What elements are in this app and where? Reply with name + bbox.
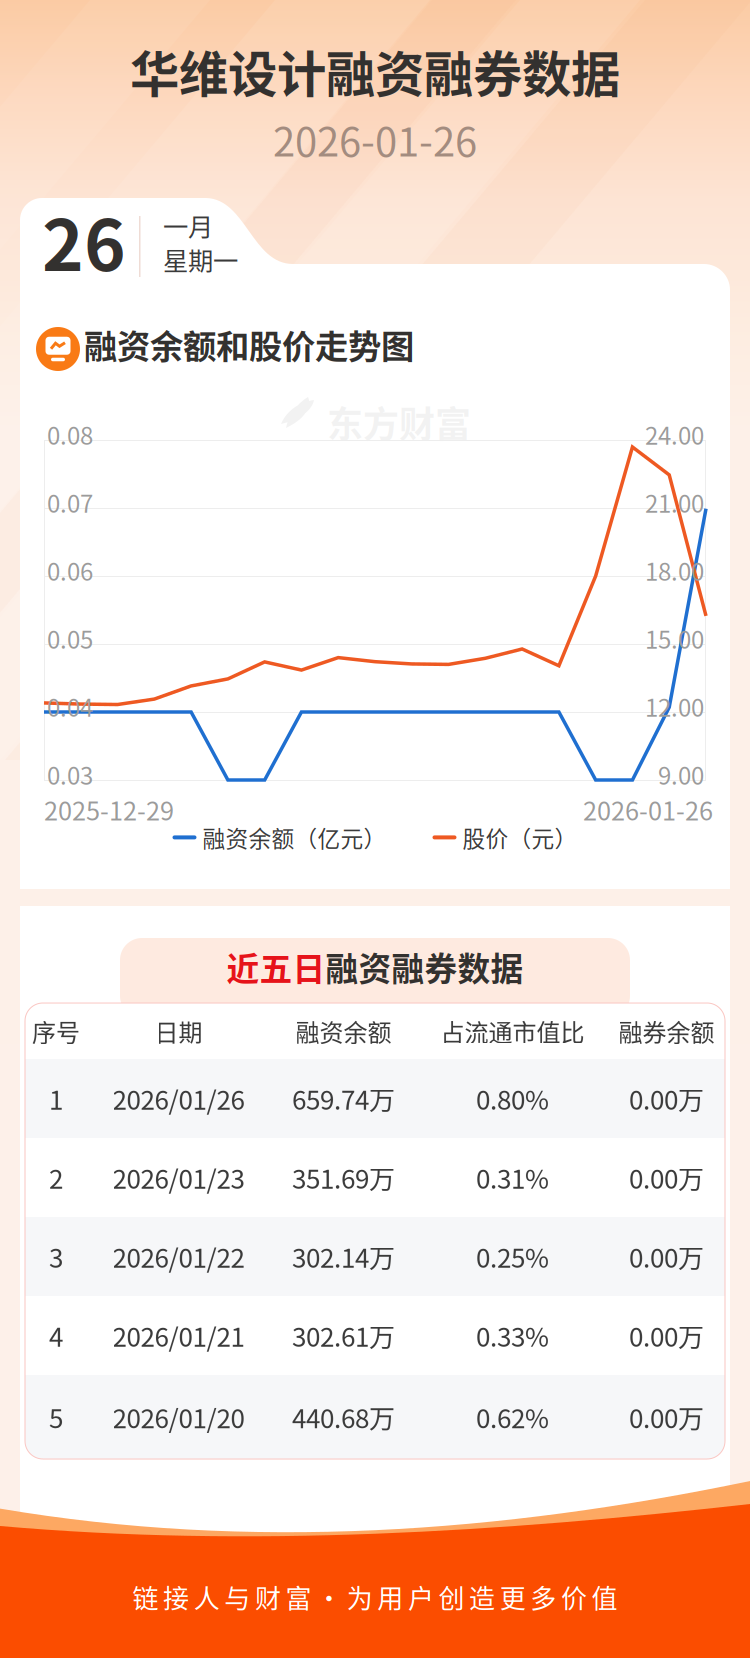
staticText: 0.80% xyxy=(476,1080,549,1117)
staticText: 351.69万 xyxy=(292,1159,395,1196)
staticText: 2025-12-29 xyxy=(44,791,174,828)
staticText: 造 xyxy=(469,1578,495,1616)
staticText: 日期 xyxy=(154,1014,202,1048)
staticText: 0.62% xyxy=(476,1398,549,1436)
staticText: 9.00 xyxy=(658,757,704,792)
staticText: 0.03 xyxy=(47,757,93,792)
staticText: 12.00 xyxy=(645,689,704,724)
staticText: 0.00万 xyxy=(629,1317,704,1354)
staticText: 融资余额（亿元） xyxy=(202,821,386,854)
staticText: 一月 xyxy=(163,207,213,244)
staticText: 近五日 xyxy=(226,943,325,990)
staticText: 值 xyxy=(591,1578,617,1616)
staticText: 2026-01-26 xyxy=(583,791,713,828)
staticText: 户 xyxy=(408,1578,434,1616)
staticText: 21.00 xyxy=(645,485,704,520)
staticText: 0.00万 xyxy=(629,1398,704,1436)
staticText: 融券余额 xyxy=(618,1014,714,1048)
staticText: 659.74万 xyxy=(292,1080,395,1117)
staticText: 融资余额 xyxy=(295,1014,391,1048)
staticText: 5 xyxy=(49,1398,63,1436)
staticText: 多 xyxy=(530,1578,556,1616)
staticText: 2026/01/26 xyxy=(112,1080,244,1117)
staticText: 4 xyxy=(49,1317,63,1354)
staticText: 2026/01/21 xyxy=(112,1317,244,1354)
staticText: 0.08 xyxy=(47,417,93,452)
staticText: 融资余额和股价走势图 xyxy=(84,320,414,368)
staticText: 为 xyxy=(347,1578,373,1616)
staticText: 26 xyxy=(42,189,126,291)
staticText: 302.14万 xyxy=(292,1238,395,1275)
staticText: 0.25% xyxy=(476,1238,549,1275)
staticText: 序号 xyxy=(32,1014,80,1048)
staticText: 2026/01/20 xyxy=(112,1398,244,1436)
staticText: 0.00万 xyxy=(629,1238,704,1275)
staticText: 链 xyxy=(132,1578,158,1616)
button[interactable]: 序号 xyxy=(25,1003,725,1059)
staticText: 24.00 xyxy=(645,417,704,452)
button[interactable]: 3 xyxy=(25,1217,725,1296)
staticText: 星期一 xyxy=(163,241,238,278)
staticText: 18.00 xyxy=(645,553,704,588)
button[interactable]: 1 xyxy=(25,1059,725,1138)
staticText: 更 xyxy=(500,1578,526,1616)
staticText: 302.61万 xyxy=(292,1317,395,1354)
staticText: 人 xyxy=(194,1578,220,1616)
staticText: 创 xyxy=(438,1578,464,1616)
staticText: 2026/01/22 xyxy=(112,1238,244,1275)
staticText: 0.31% xyxy=(476,1159,549,1196)
staticText: 2 xyxy=(49,1159,63,1196)
staticText: 0.33% xyxy=(476,1317,549,1354)
staticText: 15.00 xyxy=(645,621,704,656)
staticText: 财 xyxy=(255,1578,281,1616)
staticText: 占流通市值比 xyxy=(440,1014,584,1048)
staticText: 3 xyxy=(49,1238,63,1275)
staticText: · xyxy=(316,1578,342,1616)
staticText: 0.07 xyxy=(47,485,93,520)
staticText: 东方财富 xyxy=(327,396,471,448)
staticText: 0.04 xyxy=(47,689,93,724)
staticText: 与 xyxy=(224,1578,250,1616)
button[interactable]: 2 xyxy=(25,1138,725,1217)
staticText: 2026/01/23 xyxy=(112,1159,244,1196)
staticText: 东方财富 xyxy=(327,1209,471,1261)
staticText: 2026-01-26 xyxy=(273,110,477,168)
staticText: 1 xyxy=(49,1080,63,1117)
staticText: 融资融券数据 xyxy=(325,943,523,990)
button[interactable]: 4 xyxy=(25,1296,725,1375)
staticText: 用 xyxy=(377,1578,403,1616)
staticText: 股价（元） xyxy=(462,821,577,854)
staticText: 440.68万 xyxy=(292,1398,395,1436)
staticText: 0.00万 xyxy=(629,1159,704,1196)
staticText: 华维设计融资融券数据 xyxy=(130,35,620,106)
staticText: 0.00万 xyxy=(629,1080,704,1117)
button[interactable]: 5 xyxy=(25,1375,725,1459)
staticText: 0.06 xyxy=(47,553,93,588)
staticText: 接 xyxy=(163,1578,189,1616)
staticText: 0.05 xyxy=(47,621,93,656)
staticText: 价 xyxy=(561,1578,587,1616)
staticText: 富 xyxy=(285,1578,311,1616)
